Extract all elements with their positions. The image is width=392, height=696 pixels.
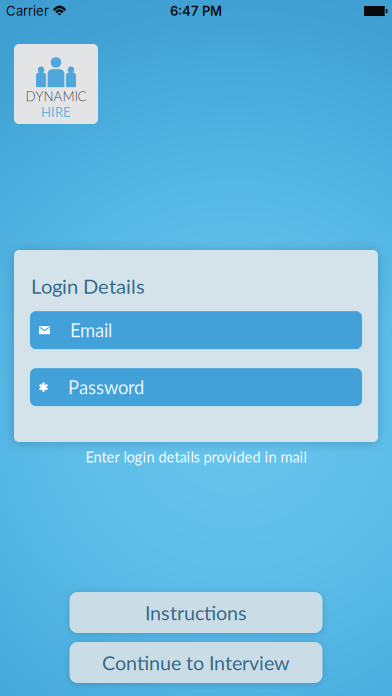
staticText: Login Details bbox=[31, 274, 145, 298]
staticText: HIRE bbox=[41, 104, 71, 120]
button[interactable]: Continue to Interview bbox=[69, 642, 322, 683]
staticText: Password bbox=[68, 376, 144, 398]
staticText: DYNAMIC bbox=[25, 88, 86, 104]
button[interactable]: Password bbox=[30, 368, 362, 406]
staticText: 6:47 PM bbox=[170, 3, 222, 19]
staticText: Email bbox=[70, 319, 112, 341]
button[interactable]: Email bbox=[30, 311, 362, 349]
staticText: Instructions bbox=[145, 601, 247, 624]
staticText: Enter login details provided in mail bbox=[85, 448, 306, 466]
staticText: Carrier bbox=[6, 3, 49, 19]
button[interactable]: Instructions bbox=[69, 592, 322, 633]
staticText: Continue to Interview bbox=[102, 651, 290, 674]
